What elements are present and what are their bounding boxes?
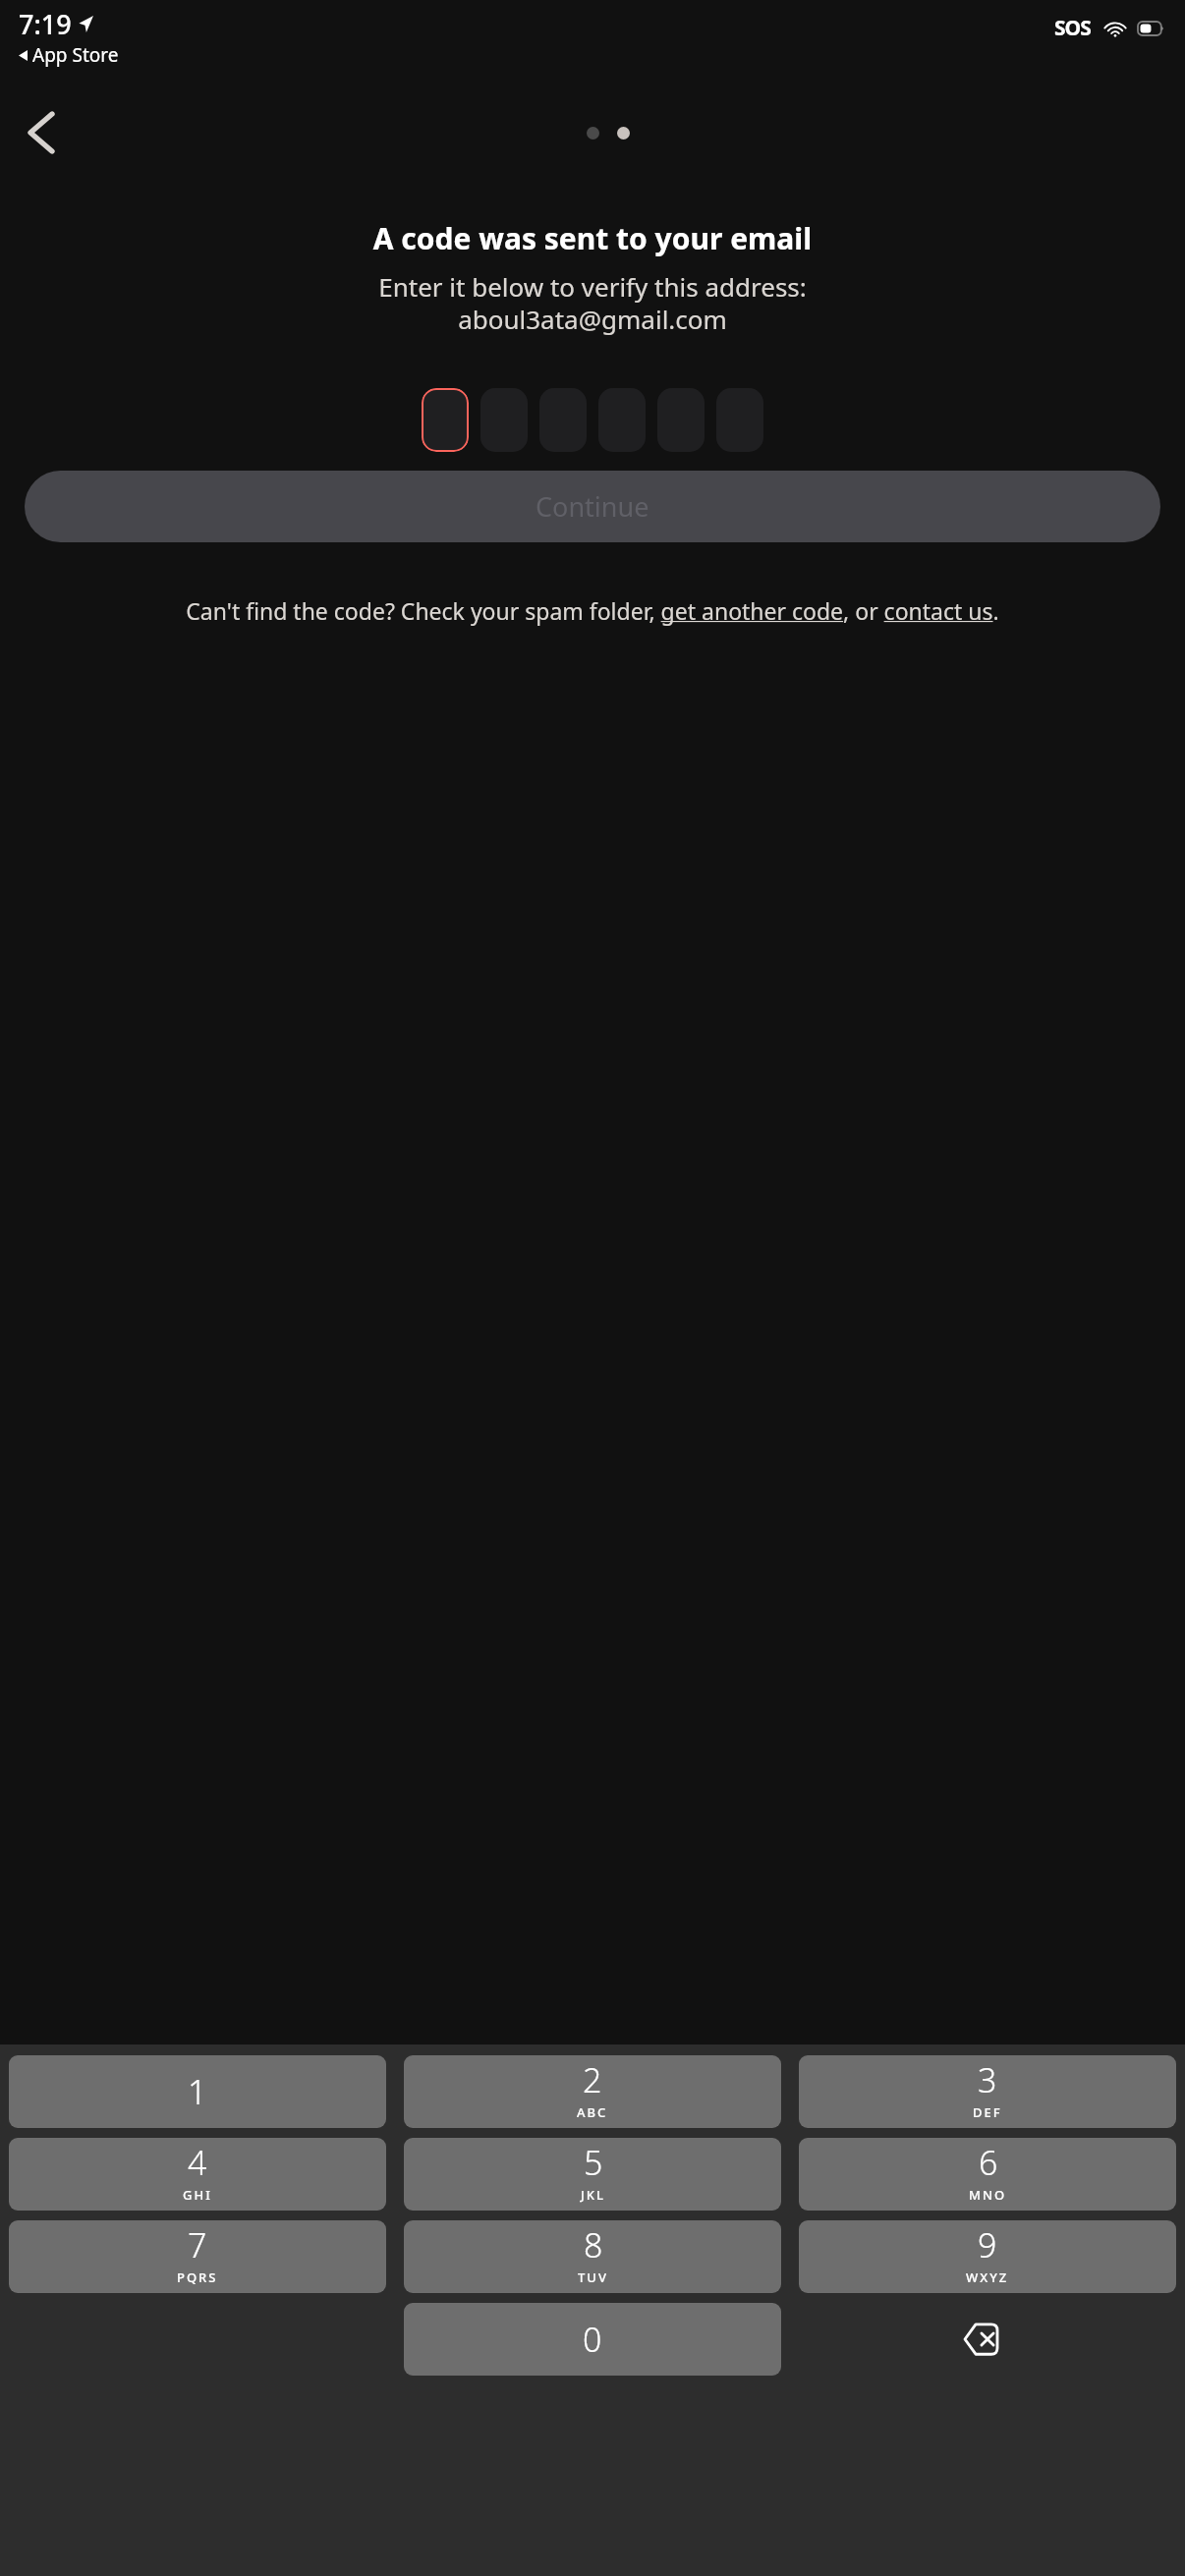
staticText: WXYZ [966, 2268, 1009, 2286]
staticText: TUV [578, 2268, 608, 2286]
button[interactable]: 9 [799, 2220, 1176, 2293]
staticText: 9 [978, 2222, 997, 2268]
staticText: 5 [584, 2140, 603, 2185]
button[interactable]: 0 [404, 2303, 781, 2376]
button[interactable]: Backspace [799, 2303, 1176, 2376]
staticText: 3 [978, 2057, 997, 2102]
staticText: 7 [188, 2222, 207, 2268]
staticText: 6 [979, 2140, 998, 2185]
staticText: Continue [536, 488, 649, 525]
staticText: Enter it below to verify this address: a… [26, 269, 1159, 337]
button[interactable]: 6 [799, 2138, 1176, 2211]
staticText: 2 [583, 2057, 602, 2102]
button[interactable]: 4 [9, 2138, 386, 2211]
staticText: 1 [188, 2069, 207, 2114]
staticText: App Store [32, 42, 119, 68]
button[interactable]: 2 [404, 2055, 781, 2128]
button[interactable]: Back [8, 99, 75, 166]
button[interactable]: 7 [9, 2220, 386, 2293]
staticText: JKL [581, 2186, 605, 2204]
staticText: 8 [584, 2222, 603, 2268]
button[interactable]: 1 [9, 2055, 386, 2128]
staticText: PQRS [177, 2268, 218, 2286]
button[interactable]: Code digit 4 [598, 388, 646, 452]
staticText: MNO [969, 2186, 1007, 2204]
button[interactable]: Code digit 2 [480, 388, 528, 452]
button[interactable]: Continue [25, 471, 1160, 542]
staticText: GHI [183, 2186, 212, 2204]
staticText: 0 [583, 2317, 602, 2362]
button[interactable]: Code digit 1 [422, 388, 469, 452]
staticText: ABC [577, 2103, 608, 2121]
staticText: 4 [188, 2140, 207, 2185]
button[interactable]: Code digit 3 [539, 388, 587, 452]
button[interactable]: Can't find the code? Check your spam fol… [57, 595, 1128, 626]
staticText: SOS [1054, 14, 1091, 42]
button[interactable]: Code digit 5 [657, 388, 705, 452]
staticText: 7:19 [19, 6, 72, 42]
button[interactable]: 3 [799, 2055, 1176, 2128]
staticText: Can't find the code? Check your spam fol… [57, 595, 1128, 626]
button[interactable]: Code digit 6 [716, 388, 763, 452]
staticText: DEF [973, 2103, 1002, 2121]
button[interactable]: 5 [404, 2138, 781, 2211]
button[interactable]: 8 [404, 2220, 781, 2293]
staticText: A code was sent to your email [26, 218, 1159, 258]
